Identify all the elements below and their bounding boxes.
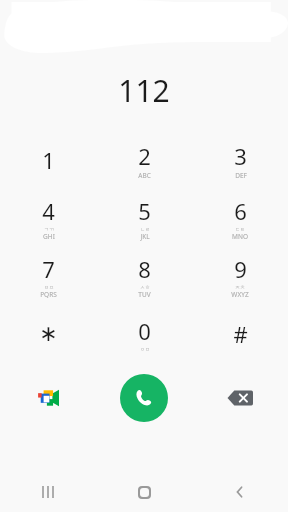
staticText: ㅇㅁ [140, 346, 150, 352]
staticText: ㄷㅌ [235, 226, 245, 232]
staticText: 1 [42, 145, 55, 175]
button[interactable]: 4 [0, 189, 96, 247]
staticText: PQRS [40, 290, 57, 299]
button[interactable]: Back [192, 472, 288, 512]
button[interactable]: 3 [192, 131, 288, 189]
staticText: 0 [138, 316, 151, 346]
staticText: 5 [138, 196, 151, 226]
staticText: ㄴㄹ [140, 226, 150, 232]
button[interactable]: Call [120, 374, 168, 422]
staticText: DEF [235, 171, 247, 180]
staticText: WXYZ [231, 290, 249, 299]
staticText: 7 [42, 254, 55, 284]
staticText: JKL [140, 232, 150, 241]
button[interactable]: Recents [0, 472, 96, 512]
staticText: ㄱㄲ [44, 226, 54, 232]
button[interactable]: ∗ [0, 305, 96, 363]
button[interactable]: # [192, 305, 288, 363]
button[interactable]: 2 [96, 131, 192, 189]
staticText: ㅈㅊ [235, 284, 245, 290]
staticText: 2 [138, 141, 151, 171]
staticText: 9 [234, 254, 247, 284]
staticText: 8 [138, 254, 151, 284]
button[interactable]: 5 [96, 189, 192, 247]
button[interactable]: 9 [192, 247, 288, 305]
button[interactable]: 8 [96, 247, 192, 305]
button[interactable]: Backspace [192, 366, 288, 430]
staticText: GHI [43, 232, 55, 241]
button[interactable]: Video call [0, 366, 96, 430]
button[interactable]: 7 [0, 247, 96, 305]
button[interactable]: 0 [96, 305, 192, 363]
staticText: ㅂㅍ [44, 284, 54, 290]
staticText: MNO [232, 232, 248, 241]
button[interactable]: 1 [0, 131, 96, 189]
staticText: ABC [138, 171, 151, 180]
staticText: ∗ [39, 321, 58, 347]
staticText: ㅅㅎ [140, 284, 150, 290]
staticText: TUV [138, 290, 151, 299]
staticText: # [233, 319, 248, 349]
staticText: 3 [234, 141, 247, 171]
button[interactable]: 6 [192, 189, 288, 247]
button[interactable]: Home [96, 472, 192, 512]
staticText: 112 [118, 70, 170, 110]
staticText: 6 [234, 196, 247, 226]
staticText: 4 [42, 196, 55, 226]
